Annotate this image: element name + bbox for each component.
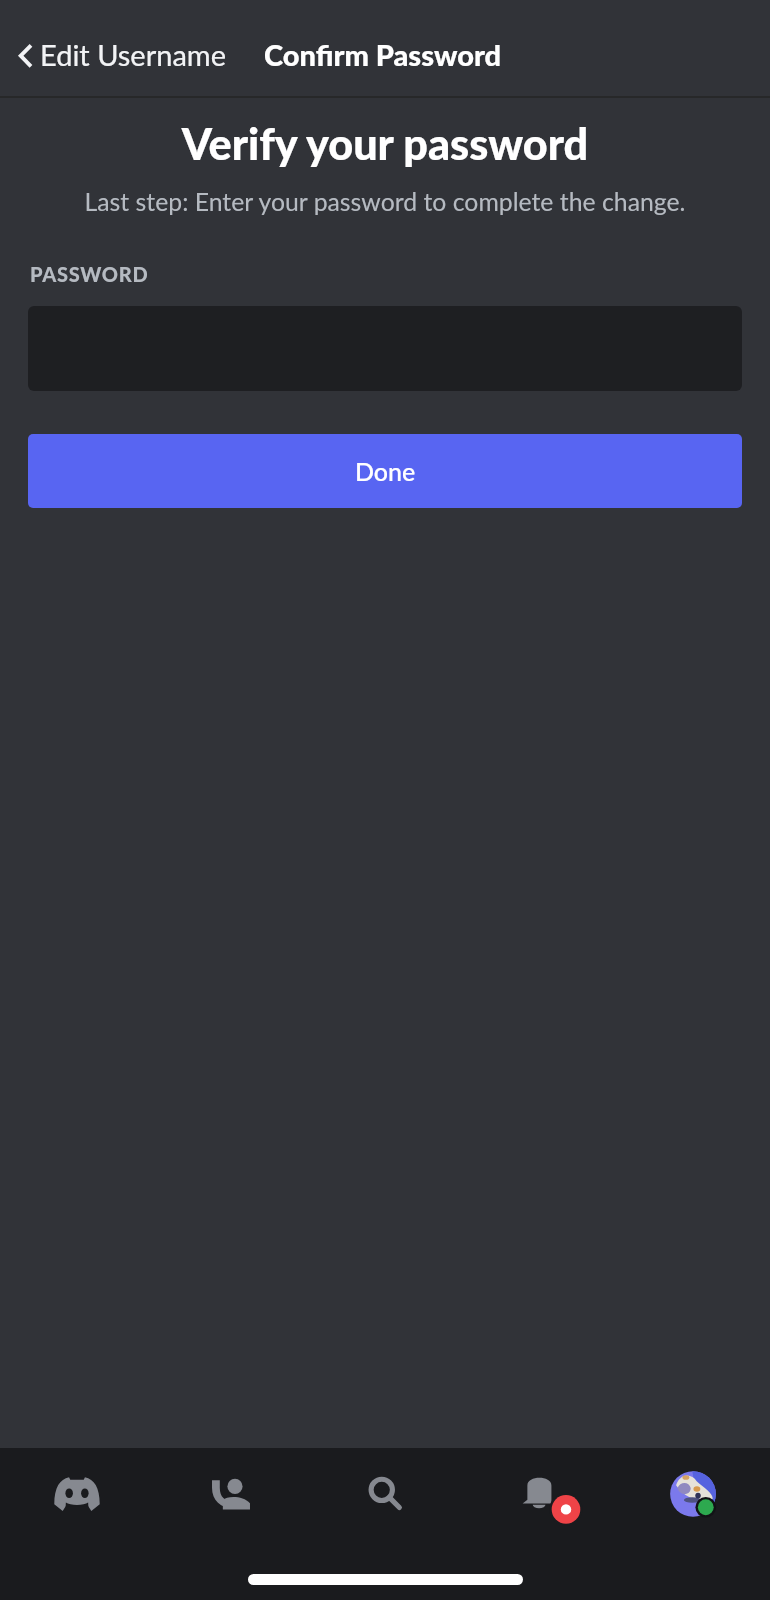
staticText: PASSWORD [30, 262, 149, 286]
staticText: Confirm Password [264, 37, 502, 72]
staticText: Edit Username [40, 37, 226, 72]
staticText: Last step: Enter your password to comple… [0, 187, 770, 217]
button[interactable]: Search [308, 1448, 462, 1539]
button[interactable]: Done [28, 434, 742, 508]
button[interactable]: Notifications [462, 1448, 616, 1539]
button[interactable]: You [616, 1448, 770, 1539]
button[interactable]: Edit Username [0, 37, 232, 72]
button[interactable]: Servers [0, 1448, 154, 1539]
staticText: Done [355, 456, 416, 486]
button[interactable]: Friends [154, 1448, 308, 1539]
staticText: Verify your password [0, 117, 770, 169]
